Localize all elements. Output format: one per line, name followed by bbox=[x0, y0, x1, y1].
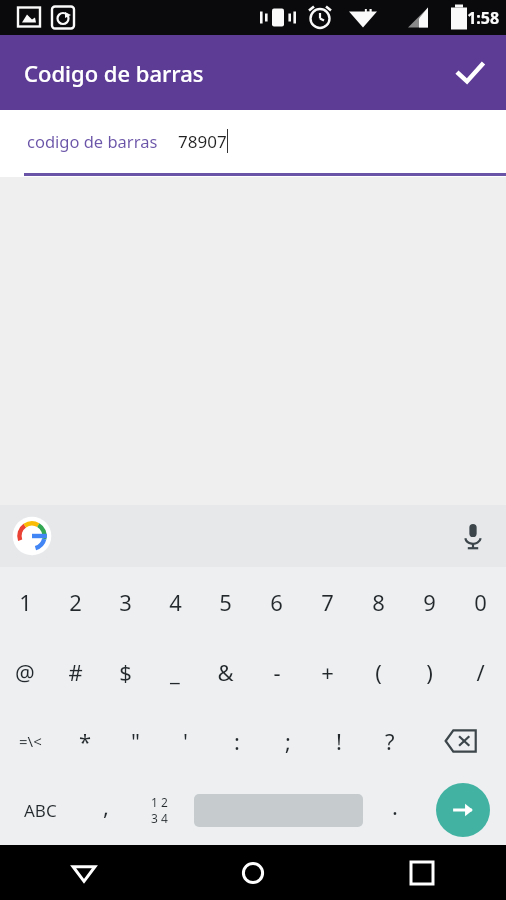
staticText: =\< bbox=[19, 731, 42, 751]
button[interactable]: 7 bbox=[302, 567, 353, 637]
staticText: _ bbox=[170, 657, 180, 687]
staticText: ABC bbox=[24, 799, 57, 822]
button[interactable]: ' bbox=[160, 707, 211, 775]
button[interactable]: 9 bbox=[404, 567, 455, 637]
staticText: 7 bbox=[321, 587, 334, 617]
staticText: " bbox=[131, 726, 140, 756]
staticText: 11:58 bbox=[458, 7, 500, 29]
button[interactable]: $ bbox=[100, 637, 150, 707]
button[interactable]: / bbox=[455, 637, 506, 707]
button[interactable]: 0 bbox=[455, 567, 506, 637]
staticText: 2 bbox=[69, 587, 82, 617]
button[interactable]: Confirmar bbox=[446, 49, 494, 97]
staticText: 5 bbox=[219, 587, 232, 617]
staticText: 6 bbox=[270, 587, 283, 617]
button[interactable]: ? bbox=[364, 707, 415, 775]
button[interactable]: 2 bbox=[50, 567, 100, 637]
staticText: @ bbox=[15, 657, 35, 687]
staticText: $ bbox=[119, 657, 132, 687]
button[interactable]: Espacio bbox=[187, 775, 369, 845]
button[interactable]: 1 bbox=[0, 567, 50, 637]
staticText: 0 bbox=[474, 587, 487, 617]
button[interactable]: Inicio bbox=[168, 845, 337, 900]
staticText: ! bbox=[336, 726, 342, 756]
staticText: 1 2 bbox=[151, 794, 168, 810]
staticText: : bbox=[234, 726, 240, 756]
button[interactable]: _ bbox=[150, 637, 200, 707]
button[interactable]: Google bbox=[10, 514, 54, 558]
staticText: 8 bbox=[372, 587, 385, 617]
button[interactable]: * bbox=[60, 707, 110, 775]
staticText: # bbox=[68, 657, 83, 687]
button[interactable]: 5 bbox=[200, 567, 251, 637]
button[interactable]: " bbox=[110, 707, 160, 775]
staticText: ( bbox=[375, 657, 382, 687]
button[interactable]: Atras bbox=[0, 845, 168, 900]
button[interactable]: Retroceso bbox=[415, 707, 506, 775]
button[interactable]: @ bbox=[0, 637, 50, 707]
button[interactable]: ) bbox=[404, 637, 455, 707]
button[interactable]: Recientes bbox=[337, 845, 506, 900]
staticText: 3 bbox=[119, 587, 132, 617]
staticText: - bbox=[273, 657, 281, 687]
button[interactable]: # bbox=[50, 637, 100, 707]
staticText: Codigo de barras bbox=[24, 58, 204, 88]
staticText: ' bbox=[183, 726, 188, 756]
staticText: / bbox=[476, 657, 485, 687]
button[interactable]: ; bbox=[262, 707, 313, 775]
button[interactable]: Entrada de voz bbox=[452, 515, 494, 557]
button[interactable]: , bbox=[80, 775, 131, 845]
staticText: * bbox=[79, 726, 92, 756]
staticText: H bbox=[364, 5, 373, 20]
staticText: 78907 bbox=[178, 130, 227, 153]
staticText: ? bbox=[385, 726, 395, 756]
button[interactable]: 6 bbox=[251, 567, 302, 637]
button[interactable]: ABC bbox=[0, 775, 80, 845]
button[interactable]: Intro bbox=[420, 775, 506, 845]
button[interactable]: - bbox=[251, 637, 302, 707]
staticText: 3 4 bbox=[151, 810, 168, 826]
button[interactable]: codigo de barras bbox=[0, 110, 506, 177]
staticText: ; bbox=[285, 726, 291, 756]
button[interactable]: 3 bbox=[100, 567, 150, 637]
staticText: 1 bbox=[19, 587, 32, 617]
button[interactable]: : bbox=[211, 707, 262, 775]
button[interactable]: . bbox=[369, 775, 420, 845]
staticText: 4 bbox=[169, 587, 182, 617]
staticText: 9 bbox=[423, 587, 436, 617]
button[interactable]: ( bbox=[353, 637, 404, 707]
button[interactable]: =\< bbox=[0, 707, 60, 775]
staticText: . bbox=[392, 791, 398, 821]
staticText: + bbox=[321, 657, 334, 687]
button[interactable]: ! bbox=[313, 707, 364, 775]
staticText: ) bbox=[426, 657, 433, 687]
staticText: , bbox=[103, 791, 109, 821]
button[interactable]: & bbox=[200, 637, 251, 707]
staticText: codigo de barras bbox=[27, 130, 158, 152]
button[interactable]: 8 bbox=[353, 567, 404, 637]
staticText: & bbox=[217, 657, 234, 687]
button[interactable]: Teclado numerico bbox=[131, 775, 187, 845]
button[interactable]: 4 bbox=[150, 567, 200, 637]
button[interactable]: + bbox=[302, 637, 353, 707]
